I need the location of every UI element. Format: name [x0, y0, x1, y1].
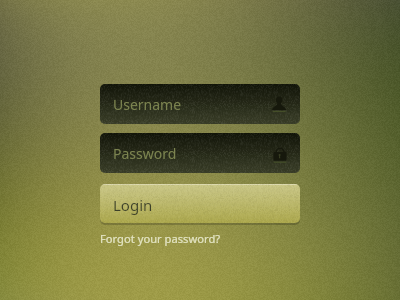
staticText: Username: [113, 95, 182, 114]
button[interactable]: Username: [100, 84, 300, 124]
other: Password: [271, 143, 287, 163]
button[interactable]: Login: [100, 184, 300, 223]
staticText: Login: [113, 195, 153, 215]
button[interactable]: Password: [100, 133, 300, 173]
button[interactable]: Forgot your password?: [100, 231, 221, 246]
other: User: [271, 94, 287, 114]
staticText: Password: [113, 144, 177, 163]
